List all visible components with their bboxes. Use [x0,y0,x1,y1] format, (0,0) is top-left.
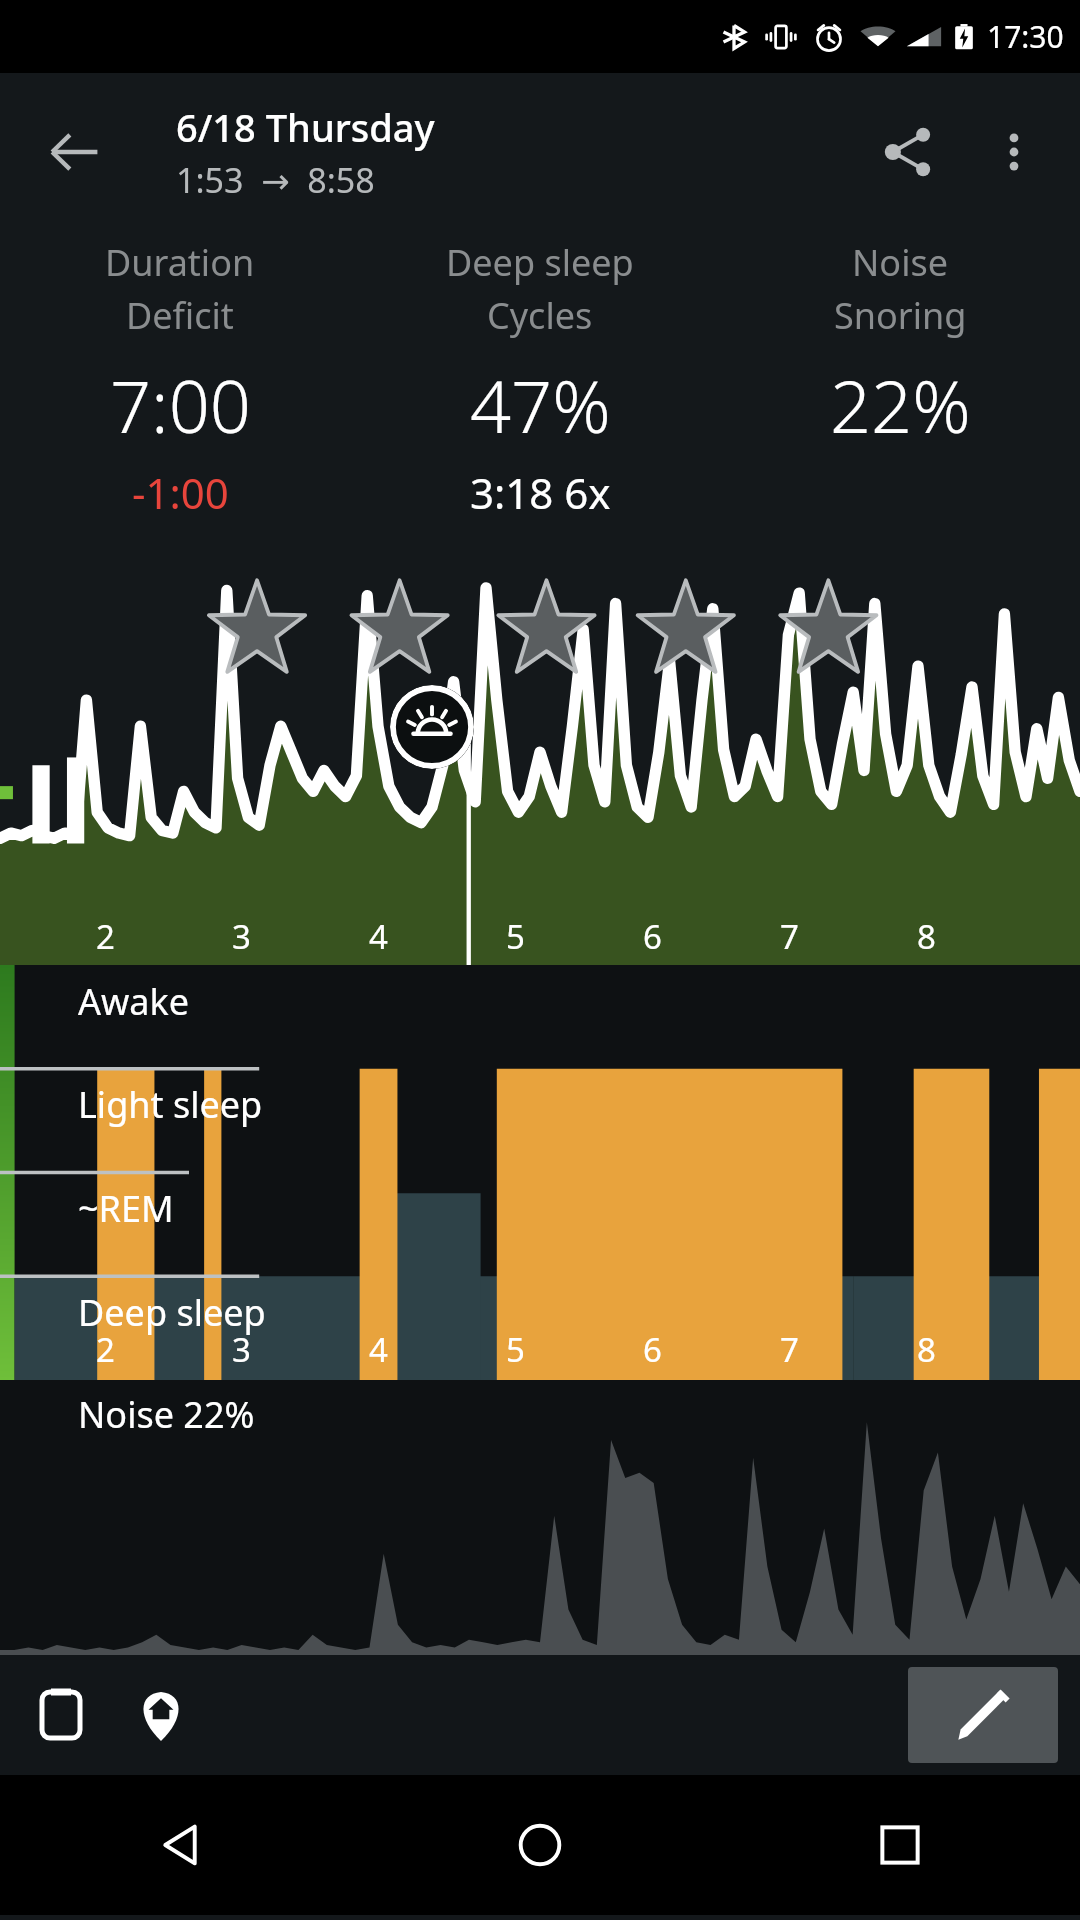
staticText: Deep sleep [446,238,634,287]
staticText: Cycles [487,291,593,340]
button[interactable]: Watch [18,1672,104,1758]
staticText: 4 [369,914,388,959]
button[interactable]: Deep sleep [360,230,720,560]
button[interactable]: Noise 22% [0,1380,1080,1655]
staticText: 1:53 → 8:58 [176,157,375,203]
staticText: Deep sleep [78,1288,266,1337]
button[interactable]: Share [866,110,950,194]
button[interactable]: Noise [720,230,1080,560]
staticText: 2 [96,914,115,959]
staticText: Duration [105,238,255,287]
staticText: 47% [470,356,611,454]
staticText: Noise 22% [78,1390,255,1439]
staticText: Snoring [834,291,967,340]
staticText: 4 [369,1327,388,1372]
button[interactable]: Location [118,1672,204,1758]
button[interactable]: Duration [0,230,360,560]
staticText: Deficit [126,291,234,340]
button[interactable]: Edit [908,1667,1058,1763]
button[interactable]: Recent apps [720,1775,1080,1915]
button[interactable]: Sunrise [390,685,474,769]
staticText: 5 [506,1327,525,1372]
staticText: 7:00 [110,356,251,454]
staticText: 3:18 6x [470,464,611,521]
button[interactable]: 2 [0,560,1080,965]
button[interactable]: Awake [0,965,1080,1380]
staticText: 7 [780,914,799,959]
staticText: 3 [232,914,251,959]
staticText: 6 [643,1327,662,1372]
staticText: 2 [96,1327,115,1372]
staticText: 8 [917,1327,936,1372]
staticText: -1:00 [132,464,229,521]
staticText: 8 [917,914,936,959]
staticText: 5 [506,914,525,959]
staticText: 17:30 [987,16,1064,57]
button[interactable]: More options [972,110,1056,194]
button[interactable]: Home [360,1775,720,1915]
staticText: 7 [780,1327,799,1372]
staticText: Awake [78,977,190,1026]
staticText: Light sleep [78,1080,263,1129]
button[interactable]: Back [36,114,112,190]
staticText: 6/18 Thursday [176,101,435,153]
staticText: Noise [852,238,948,287]
staticText: 22% [830,356,971,454]
staticText: ~REM [78,1184,174,1233]
staticText: 6 [643,914,662,959]
staticText: 3 [232,1327,251,1372]
button[interactable]: Back [0,1775,360,1915]
